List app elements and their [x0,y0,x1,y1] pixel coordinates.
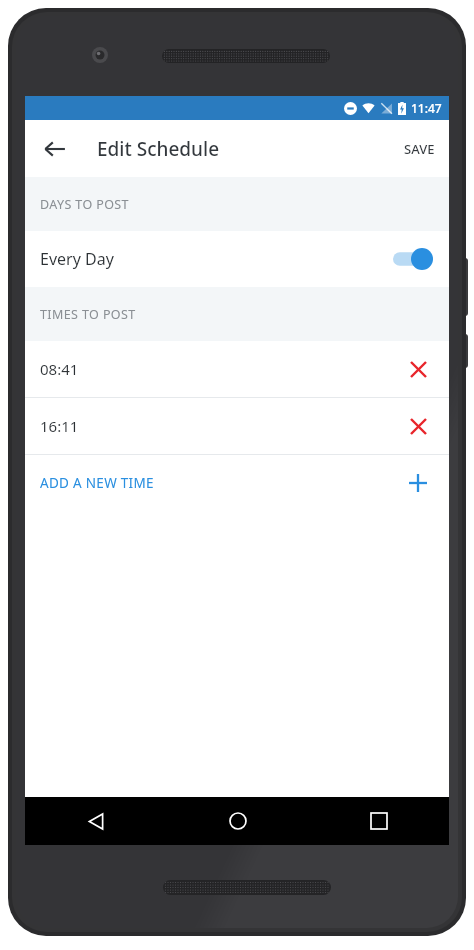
staticText: 08:41 [40,359,79,379]
button[interactable]: Add a new time [397,462,439,504]
button[interactable]: ADD A NEW TIME [25,455,449,511]
staticText: ADD A NEW TIME [40,474,154,492]
staticText: DAYS TO POST [40,196,129,213]
button[interactable]: Back [31,125,79,173]
button[interactable]: SAVE [390,120,449,177]
staticText: Edit Schedule [97,136,220,162]
staticText: TIMES TO POST [40,306,136,323]
button[interactable]: Every Day [25,231,449,287]
button[interactable]: 16:11 [25,398,449,454]
staticText: 16:11 [40,416,79,436]
staticText: 11:47 [411,100,442,116]
button[interactable]: Home [167,797,308,845]
button[interactable]: Delete time 16:11 [397,405,439,447]
button[interactable]: Every Day toggle [393,248,433,270]
button[interactable]: 08:41 [25,341,449,397]
staticText: SAVE [404,140,435,158]
button[interactable]: Recent apps [308,797,449,845]
button[interactable]: Delete time 08:41 [397,348,439,390]
staticText: Every Day [40,248,114,270]
button[interactable]: Back [25,797,167,845]
